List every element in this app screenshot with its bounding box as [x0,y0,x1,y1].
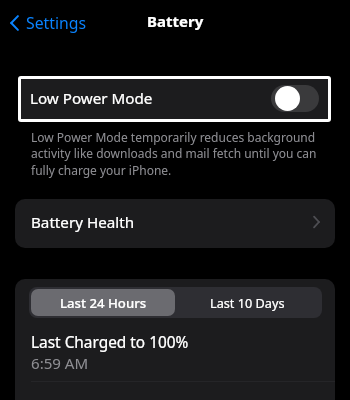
staticText: Battery Health [31,212,135,233]
staticText: Last 10 Days [210,294,285,311]
staticText: Last Charged to 100% [31,332,189,353]
staticText: Last 24 Hours [60,294,147,312]
staticText: Battery [147,11,204,31]
button[interactable]: Last 10 Days [175,289,320,316]
button[interactable]: Settings [9,10,89,36]
button[interactable]: Low Power Mode toggle [271,85,319,112]
button[interactable]: Battery Health [15,199,335,248]
button[interactable]: Last 24 Hours [31,289,175,316]
staticText: Low Power Mode [30,88,153,109]
button[interactable]: Low Power Mode [21,79,328,119]
button[interactable]: Last Charged to 100% [15,324,335,381]
staticText: Low Power Mode temporarily reduces backg… [31,129,323,178]
staticText: 6:59 AM [31,353,89,374]
staticText: Settings [26,12,87,34]
